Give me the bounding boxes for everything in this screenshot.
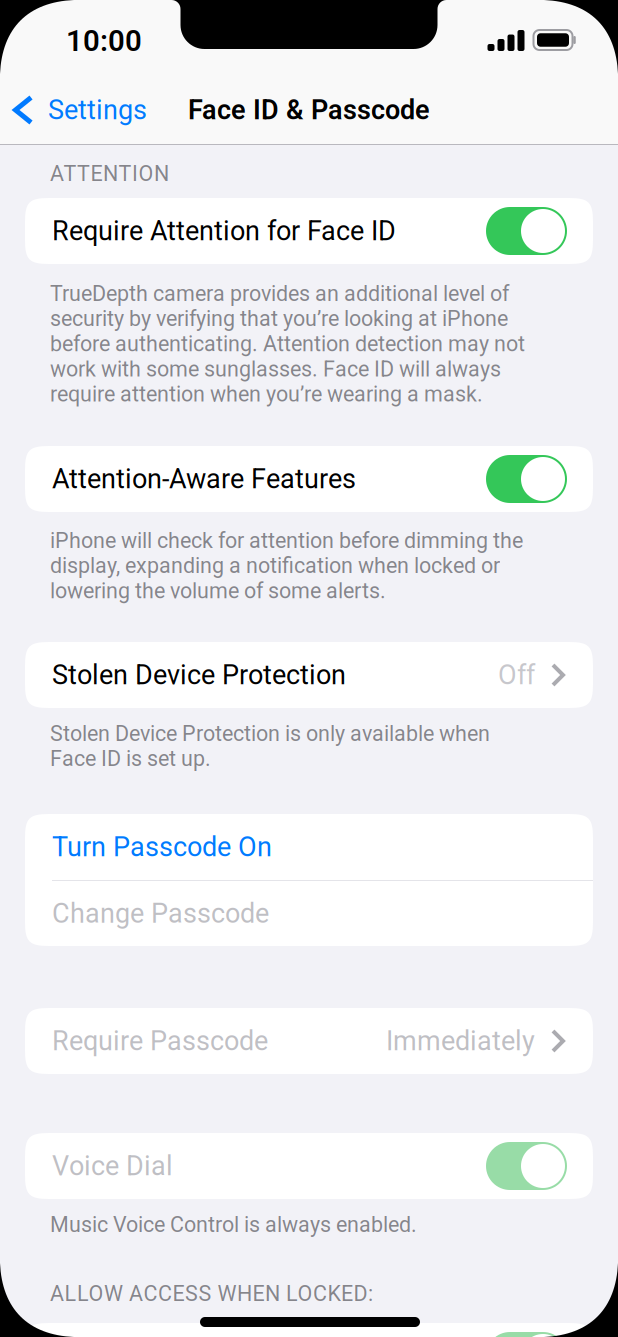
staticText: Stolen Device Protection <box>52 659 346 691</box>
staticText: Attention-Aware Features <box>52 463 356 495</box>
button[interactable]: Allow access when locked item <box>25 1323 593 1337</box>
staticText: Off <box>498 659 535 691</box>
staticText: Require Passcode <box>52 1025 268 1057</box>
button[interactable]: Turn Passcode On <box>25 814 593 880</box>
staticText: 10:00 <box>66 24 142 58</box>
staticText: Settings <box>48 94 147 126</box>
staticText: Immediately <box>386 1025 535 1057</box>
button[interactable]: Attention-Aware Features <box>25 446 593 512</box>
staticText: Voice Dial <box>52 1150 173 1182</box>
staticText: ALLOW ACCESS WHEN LOCKED: <box>50 1281 373 1306</box>
staticText: Change Passcode <box>52 898 269 929</box>
staticText: Turn Passcode On <box>52 831 272 863</box>
button[interactable]: Require Attention for Face ID <box>25 198 593 264</box>
staticText: Music Voice Control is always enabled. <box>50 1212 417 1237</box>
staticText: Require Attention for Face ID <box>52 215 396 247</box>
staticText: ATTENTION <box>50 161 169 186</box>
staticText: Face ID & Passcode <box>188 94 430 126</box>
button[interactable]: Change Passcode <box>25 881 593 946</box>
button[interactable]: Voice Dial <box>25 1133 593 1199</box>
staticText: TrueDepth camera provides an additional … <box>50 281 525 407</box>
staticText: iPhone will check for attention before d… <box>50 528 523 603</box>
button[interactable]: Require Passcode <box>25 1008 593 1074</box>
button[interactable]: Back to Settings <box>11 94 147 126</box>
button[interactable]: Stolen Device Protection <box>25 642 593 708</box>
staticText: Stolen Device Protection is only availab… <box>50 721 490 771</box>
